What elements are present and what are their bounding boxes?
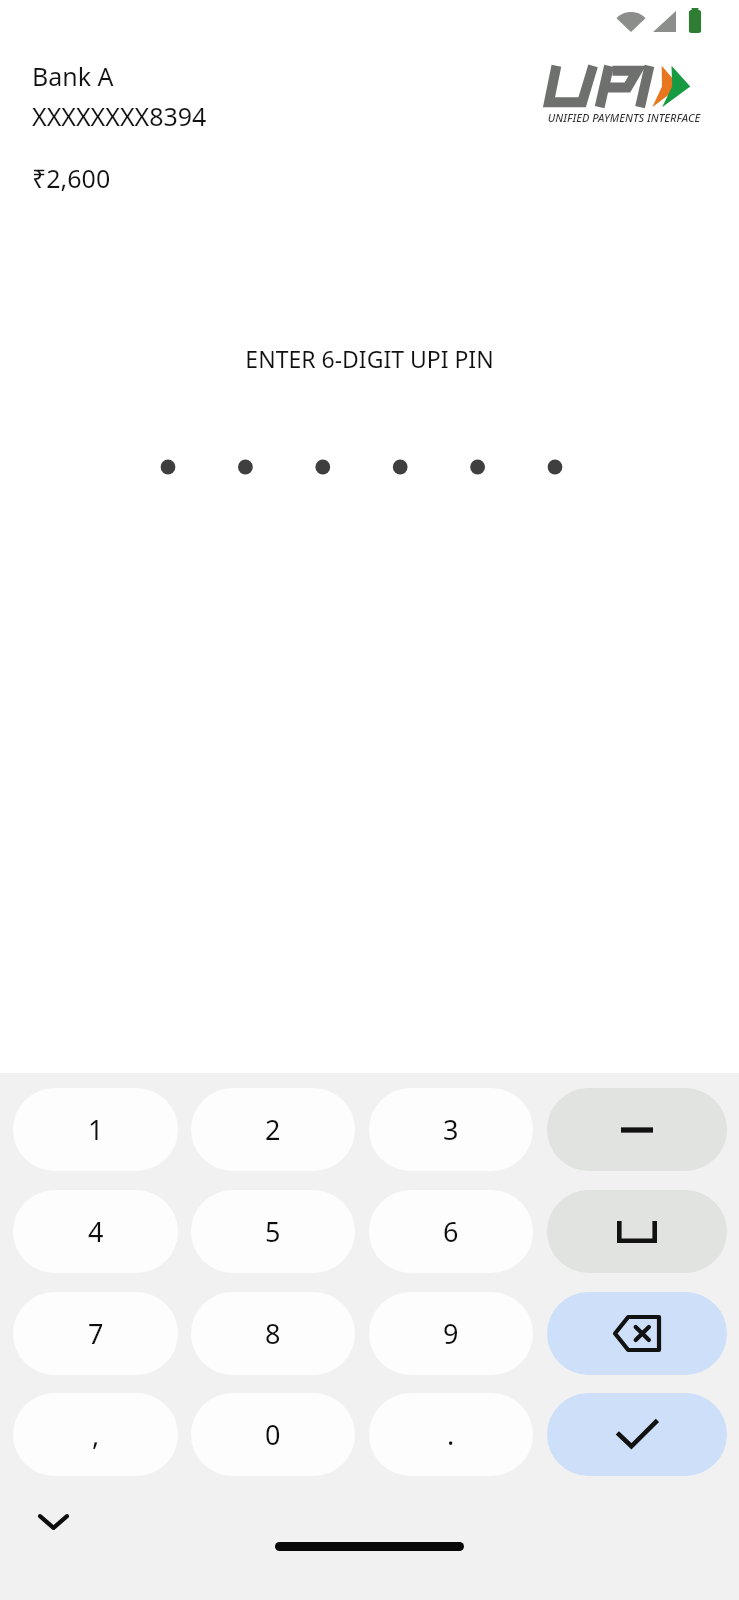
button[interactable]: 7 [13,1292,178,1375]
button[interactable]: Backspace [547,1292,727,1375]
button[interactable]: 0 [191,1393,355,1476]
staticText: 9 [443,1315,459,1352]
button[interactable]: 1 [13,1088,178,1171]
staticText: . [447,1416,455,1453]
staticText: 6 [443,1213,459,1250]
staticText: 1 [88,1111,104,1148]
staticText: 4 [88,1213,104,1250]
button[interactable]: 3 [369,1088,533,1171]
staticText: Bank A [32,59,114,93]
button[interactable]: 2 [191,1088,355,1171]
staticText: 0 [265,1416,281,1453]
staticText: 3 [443,1111,459,1148]
staticText: 7 [88,1315,104,1352]
staticText: 8 [265,1315,281,1352]
button[interactable]: 4 [13,1190,178,1273]
button[interactable]: 5 [191,1190,355,1273]
staticText: 2 [265,1111,281,1148]
button[interactable]: Confirm [547,1393,727,1476]
button[interactable]: . [369,1393,533,1476]
staticText: UNIFIED PAYMENTS INTERFACE [543,110,705,125]
button[interactable]: 8 [191,1292,355,1375]
button[interactable]: Hide keyboard [27,1496,79,1548]
staticText: 5 [265,1213,281,1250]
button[interactable]: 6 [369,1190,533,1273]
button[interactable]: , [13,1393,178,1476]
staticText: ₹2,600 [32,161,111,195]
button[interactable]: 9 [369,1292,533,1375]
staticText: XXXXXXXX8394 [32,99,207,133]
staticText: ENTER 6-DIGIT UPI PIN [0,343,739,374]
staticText: , [92,1416,100,1453]
button[interactable]: Space [547,1190,727,1273]
button[interactable]: Minus [547,1088,727,1171]
